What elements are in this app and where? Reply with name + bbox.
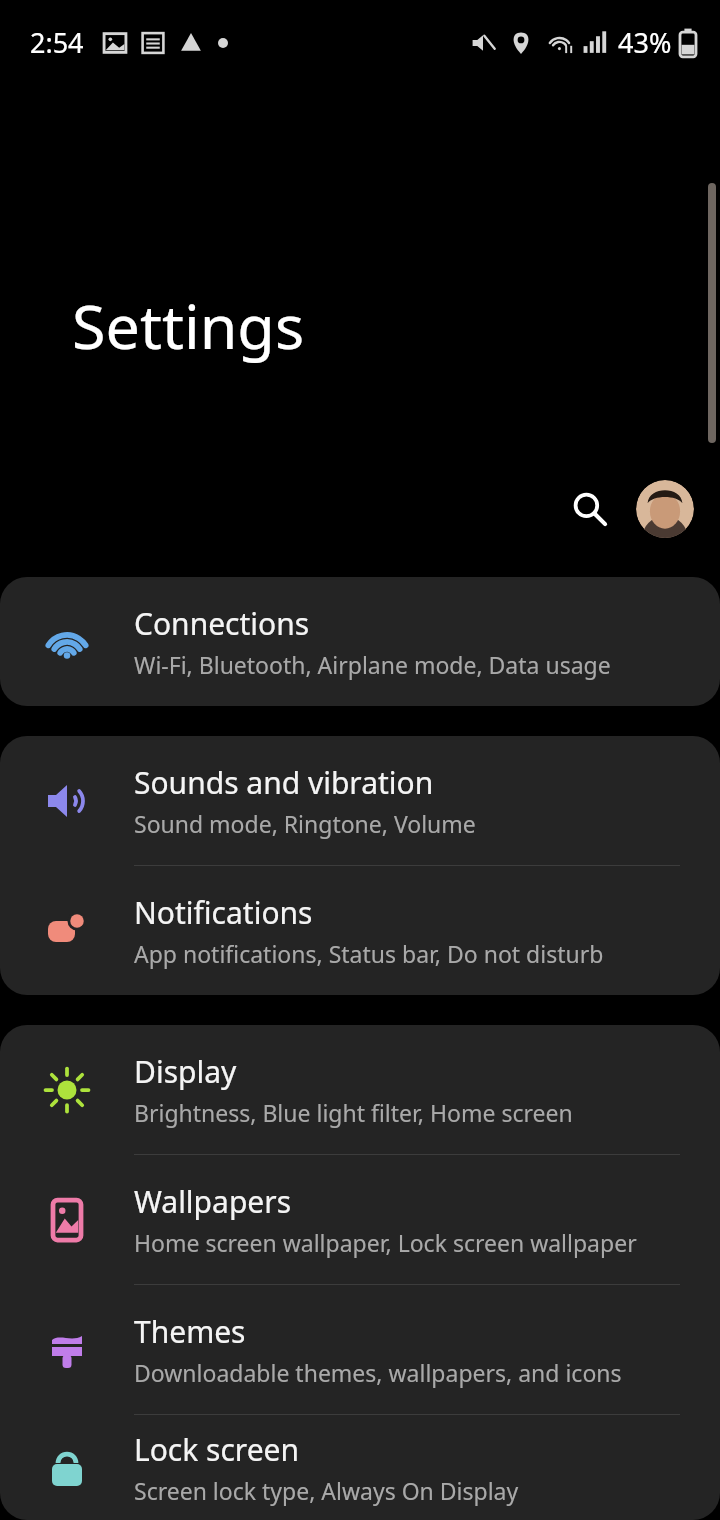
staticText: Notifications	[134, 892, 313, 933]
button[interactable]: Themes	[0, 1285, 720, 1414]
staticText: Lock screen	[134, 1429, 300, 1470]
staticText: Settings	[72, 284, 305, 367]
staticText: Sound mode, Ringtone, Volume	[134, 808, 476, 839]
button[interactable]: Notifications	[0, 866, 720, 995]
staticText: App notifications, Status bar, Do not di…	[134, 938, 604, 969]
button[interactable]: Search	[558, 477, 622, 541]
staticText: Brightness, Blue light filter, Home scre…	[134, 1097, 573, 1128]
staticText: 2:54	[30, 24, 84, 61]
staticText: Display	[134, 1051, 237, 1092]
staticText: Themes	[134, 1311, 246, 1352]
staticText: Home screen wallpaper, Lock screen wallp…	[134, 1227, 637, 1258]
button[interactable]: Lock screen	[0, 1415, 720, 1520]
staticText: Wallpapers	[134, 1181, 292, 1222]
staticText: Screen lock type, Always On Display	[134, 1475, 519, 1506]
button[interactable]: Connections	[0, 577, 720, 706]
button[interactable]: Profile	[636, 480, 694, 538]
staticText: Sounds and vibration	[134, 762, 434, 803]
staticText: Downloadable themes, wallpapers, and ico…	[134, 1357, 622, 1388]
button[interactable]: Display	[0, 1025, 720, 1154]
staticText: 43%	[618, 24, 672, 61]
staticText: Connections	[134, 603, 310, 644]
staticText: Wi-Fi, Bluetooth, Airplane mode, Data us…	[134, 649, 611, 680]
button[interactable]: Wallpapers	[0, 1155, 720, 1284]
button[interactable]: Sounds and vibration	[0, 736, 720, 865]
